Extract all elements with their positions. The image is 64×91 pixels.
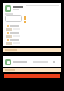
button[interactable]: [5, 15, 22, 22]
button[interactable]: App icon: [5, 59, 11, 65]
button[interactable]: App icon: [5, 5, 11, 12]
